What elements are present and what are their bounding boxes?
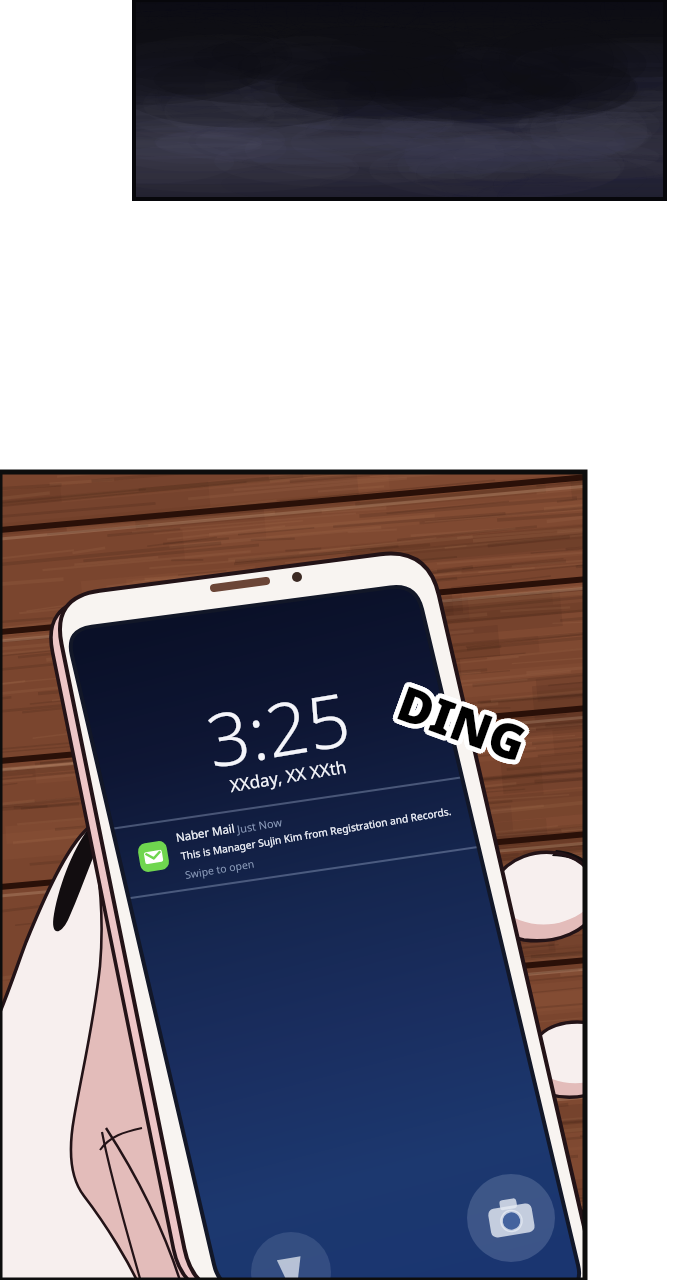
button[interactable]: Comic page [0,0,690,1280]
